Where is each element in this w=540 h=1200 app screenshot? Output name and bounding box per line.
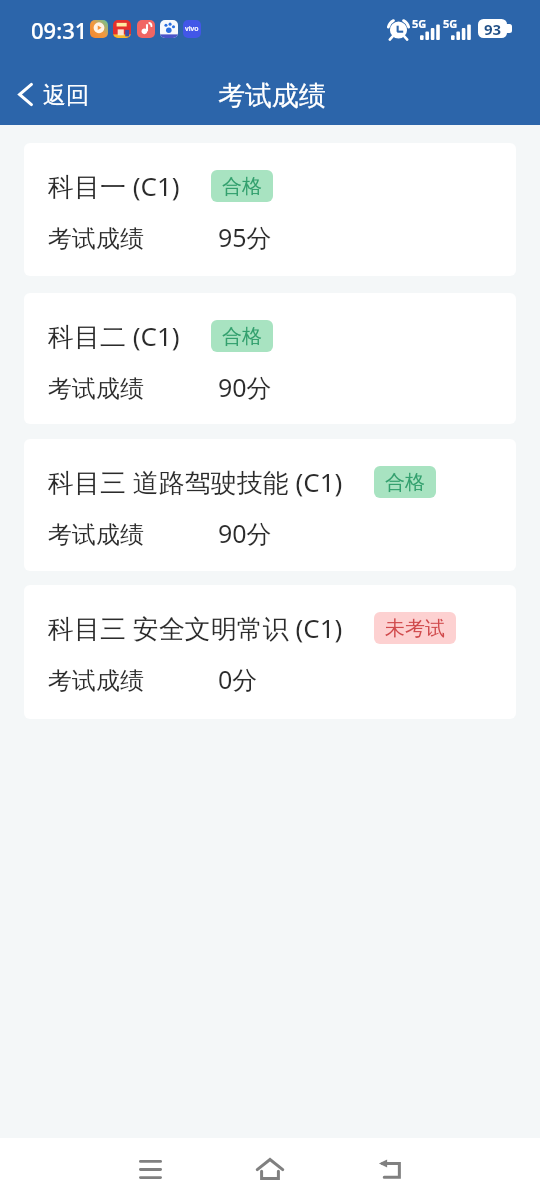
staticText: 考试成绩 bbox=[48, 224, 144, 254]
staticText: 科目三 安全文明常识 (C1) bbox=[48, 610, 343, 646]
staticText: 科目一 (C1) bbox=[48, 168, 180, 204]
staticText: 90分 bbox=[218, 516, 272, 550]
button[interactable]: Home bbox=[230, 1138, 310, 1200]
staticText: 考试成绩 bbox=[48, 374, 144, 404]
staticText: 95分 bbox=[218, 220, 272, 254]
staticText: 科目三 道路驾驶技能 (C1) bbox=[48, 464, 343, 500]
staticText: 合格 bbox=[222, 174, 262, 199]
button[interactable]: 科目三 道路驾驶技能 (C1) bbox=[24, 439, 516, 571]
staticText: 考试成绩 bbox=[218, 79, 326, 113]
staticText: 5G bbox=[443, 16, 458, 31]
staticText: 未考试 bbox=[385, 616, 445, 641]
button[interactable]: Recent apps bbox=[110, 1138, 190, 1200]
button[interactable]: 科目一 (C1) bbox=[24, 143, 516, 276]
button[interactable]: Back bbox=[350, 1138, 430, 1200]
staticText: 科目二 (C1) bbox=[48, 318, 180, 354]
staticText: 0分 bbox=[218, 662, 258, 696]
staticText: vivo bbox=[185, 24, 199, 34]
button[interactable]: Back bbox=[0, 69, 103, 114]
staticText: 93 bbox=[478, 19, 507, 38]
staticText: 09:31 bbox=[31, 15, 88, 45]
staticText: 合格 bbox=[385, 470, 425, 495]
staticText: 90分 bbox=[218, 370, 272, 404]
staticText: 5G bbox=[412, 16, 427, 31]
staticText: 考试成绩 bbox=[48, 520, 144, 550]
button[interactable]: 科目三 安全文明常识 (C1) bbox=[24, 585, 516, 719]
staticText: 合格 bbox=[222, 324, 262, 349]
button[interactable]: 科目二 (C1) bbox=[24, 293, 516, 424]
staticText: 考试成绩 bbox=[48, 666, 144, 696]
staticText: 返回 bbox=[43, 81, 89, 110]
